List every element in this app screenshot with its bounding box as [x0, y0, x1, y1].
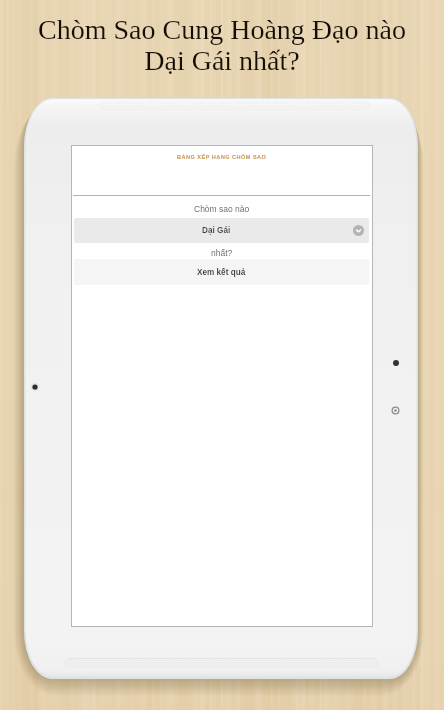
staticText: Dại Gái	[202, 226, 231, 235]
button[interactable]: Dại Gái	[74, 218, 369, 243]
button[interactable]: Xem kết quả	[74, 259, 369, 285]
staticText: nhất?	[211, 248, 233, 257]
staticText: Xem kết quả	[197, 268, 246, 277]
staticText: BẢNG XẾP HẠNG CHÒM SAO	[177, 154, 267, 160]
other: Expand dropdown	[353, 225, 364, 236]
staticText: Chòm sao nào	[194, 204, 250, 213]
staticText: Chòm Sao Cung Hoàng Đạo nào Dại Gái nhất…	[0, 14, 444, 76]
